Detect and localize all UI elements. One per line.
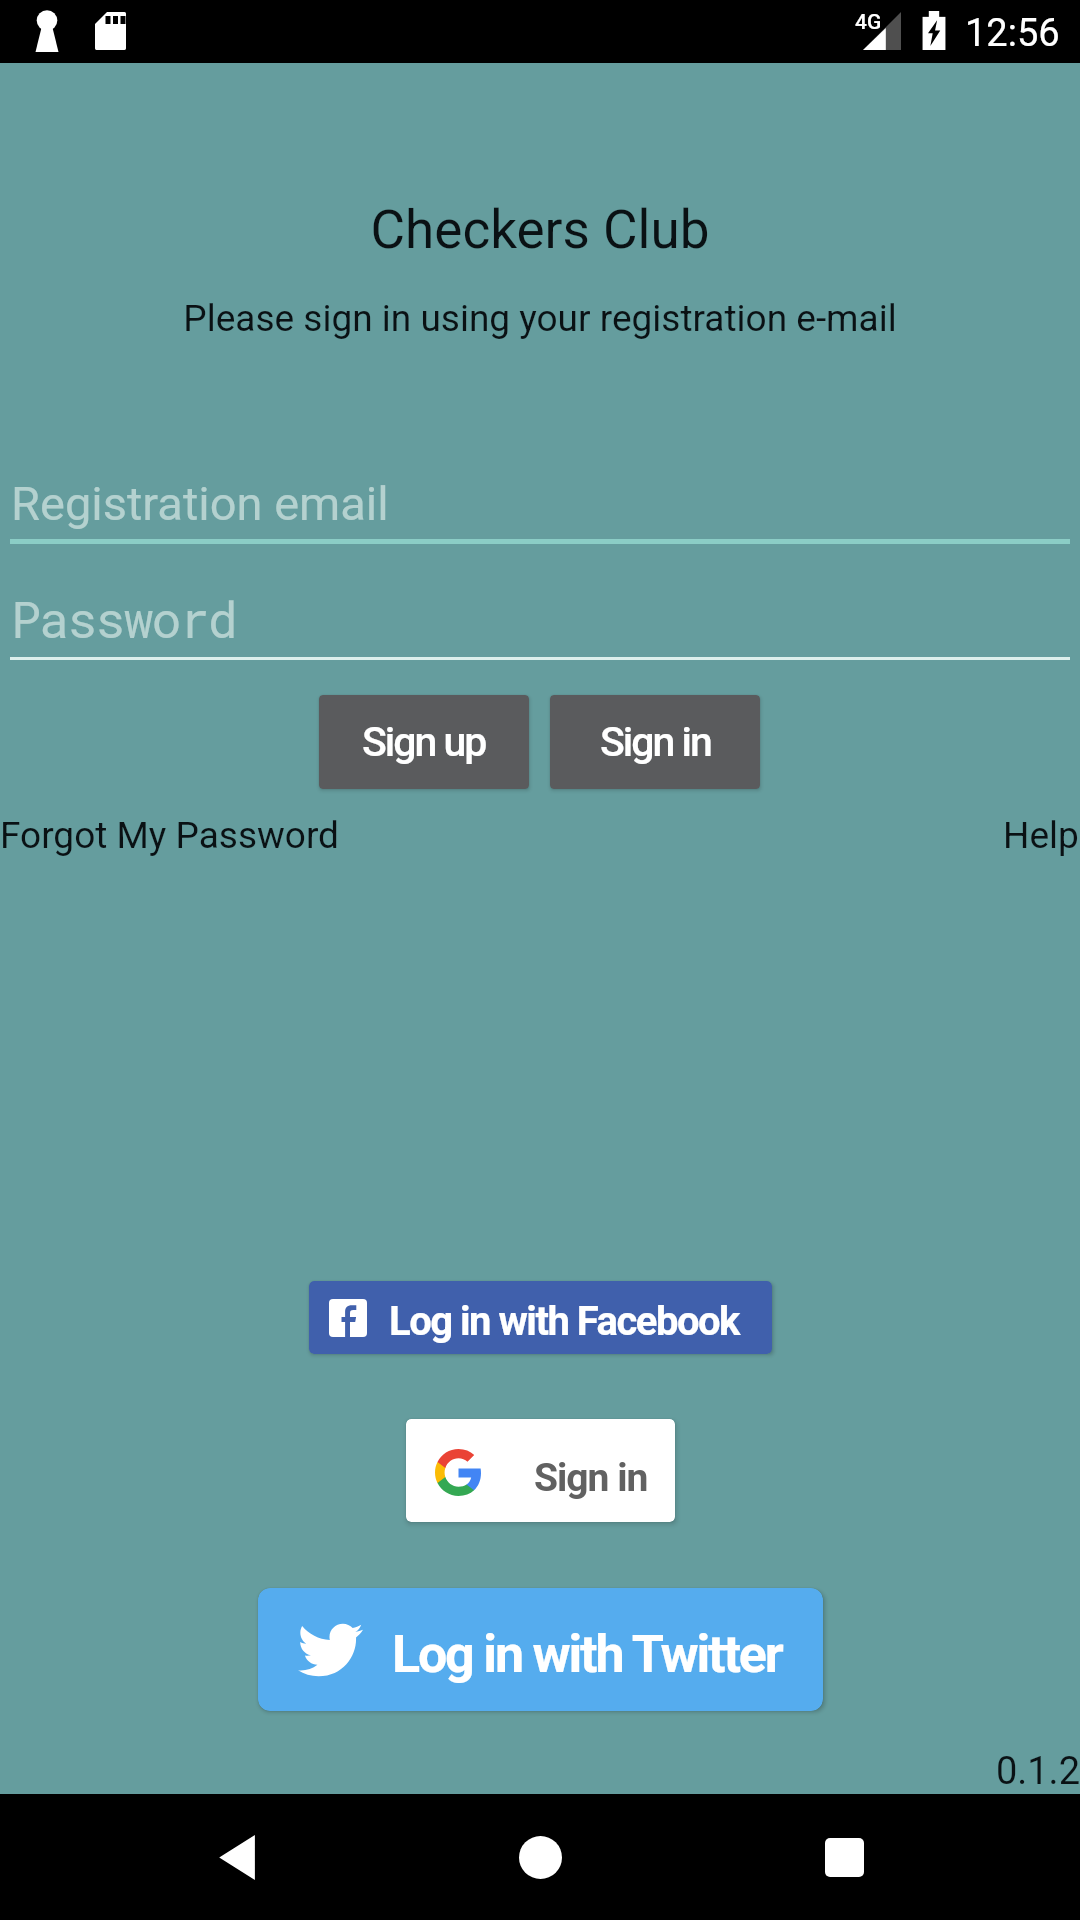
button[interactable]: Home <box>480 1794 600 1920</box>
staticText: Sign up <box>362 718 486 766</box>
button[interactable]: Log in with Twitter <box>258 1588 823 1711</box>
staticText: Please sign in using your registration e… <box>0 297 1080 340</box>
staticText: 4G <box>855 10 882 35</box>
staticText: Registration email <box>11 476 389 531</box>
button[interactable]: Password <box>0 585 1080 665</box>
button[interactable]: Sign in <box>550 695 760 789</box>
button[interactable]: Help <box>1003 814 1079 857</box>
button[interactable]: Sign in <box>406 1419 675 1522</box>
button[interactable]: Back <box>177 1794 297 1920</box>
button[interactable]: Recent apps <box>784 1794 904 1920</box>
staticText: Sign in <box>534 1455 648 1501</box>
staticText: 12:56 <box>965 11 1060 56</box>
button[interactable]: Log in with Facebook <box>309 1281 772 1354</box>
staticText: Password <box>11 586 236 652</box>
staticText: Sign in <box>600 718 711 766</box>
button[interactable]: Sign up <box>319 695 529 789</box>
staticText: Log in with Facebook <box>389 1298 739 1345</box>
staticText: Log in with Twitter <box>392 1624 782 1685</box>
button[interactable]: Forgot My Password <box>0 814 339 857</box>
staticText: 0.1.2 <box>0 1749 1080 1794</box>
button[interactable]: Registration email <box>0 465 1080 545</box>
staticText: Checkers Club <box>0 199 1080 261</box>
